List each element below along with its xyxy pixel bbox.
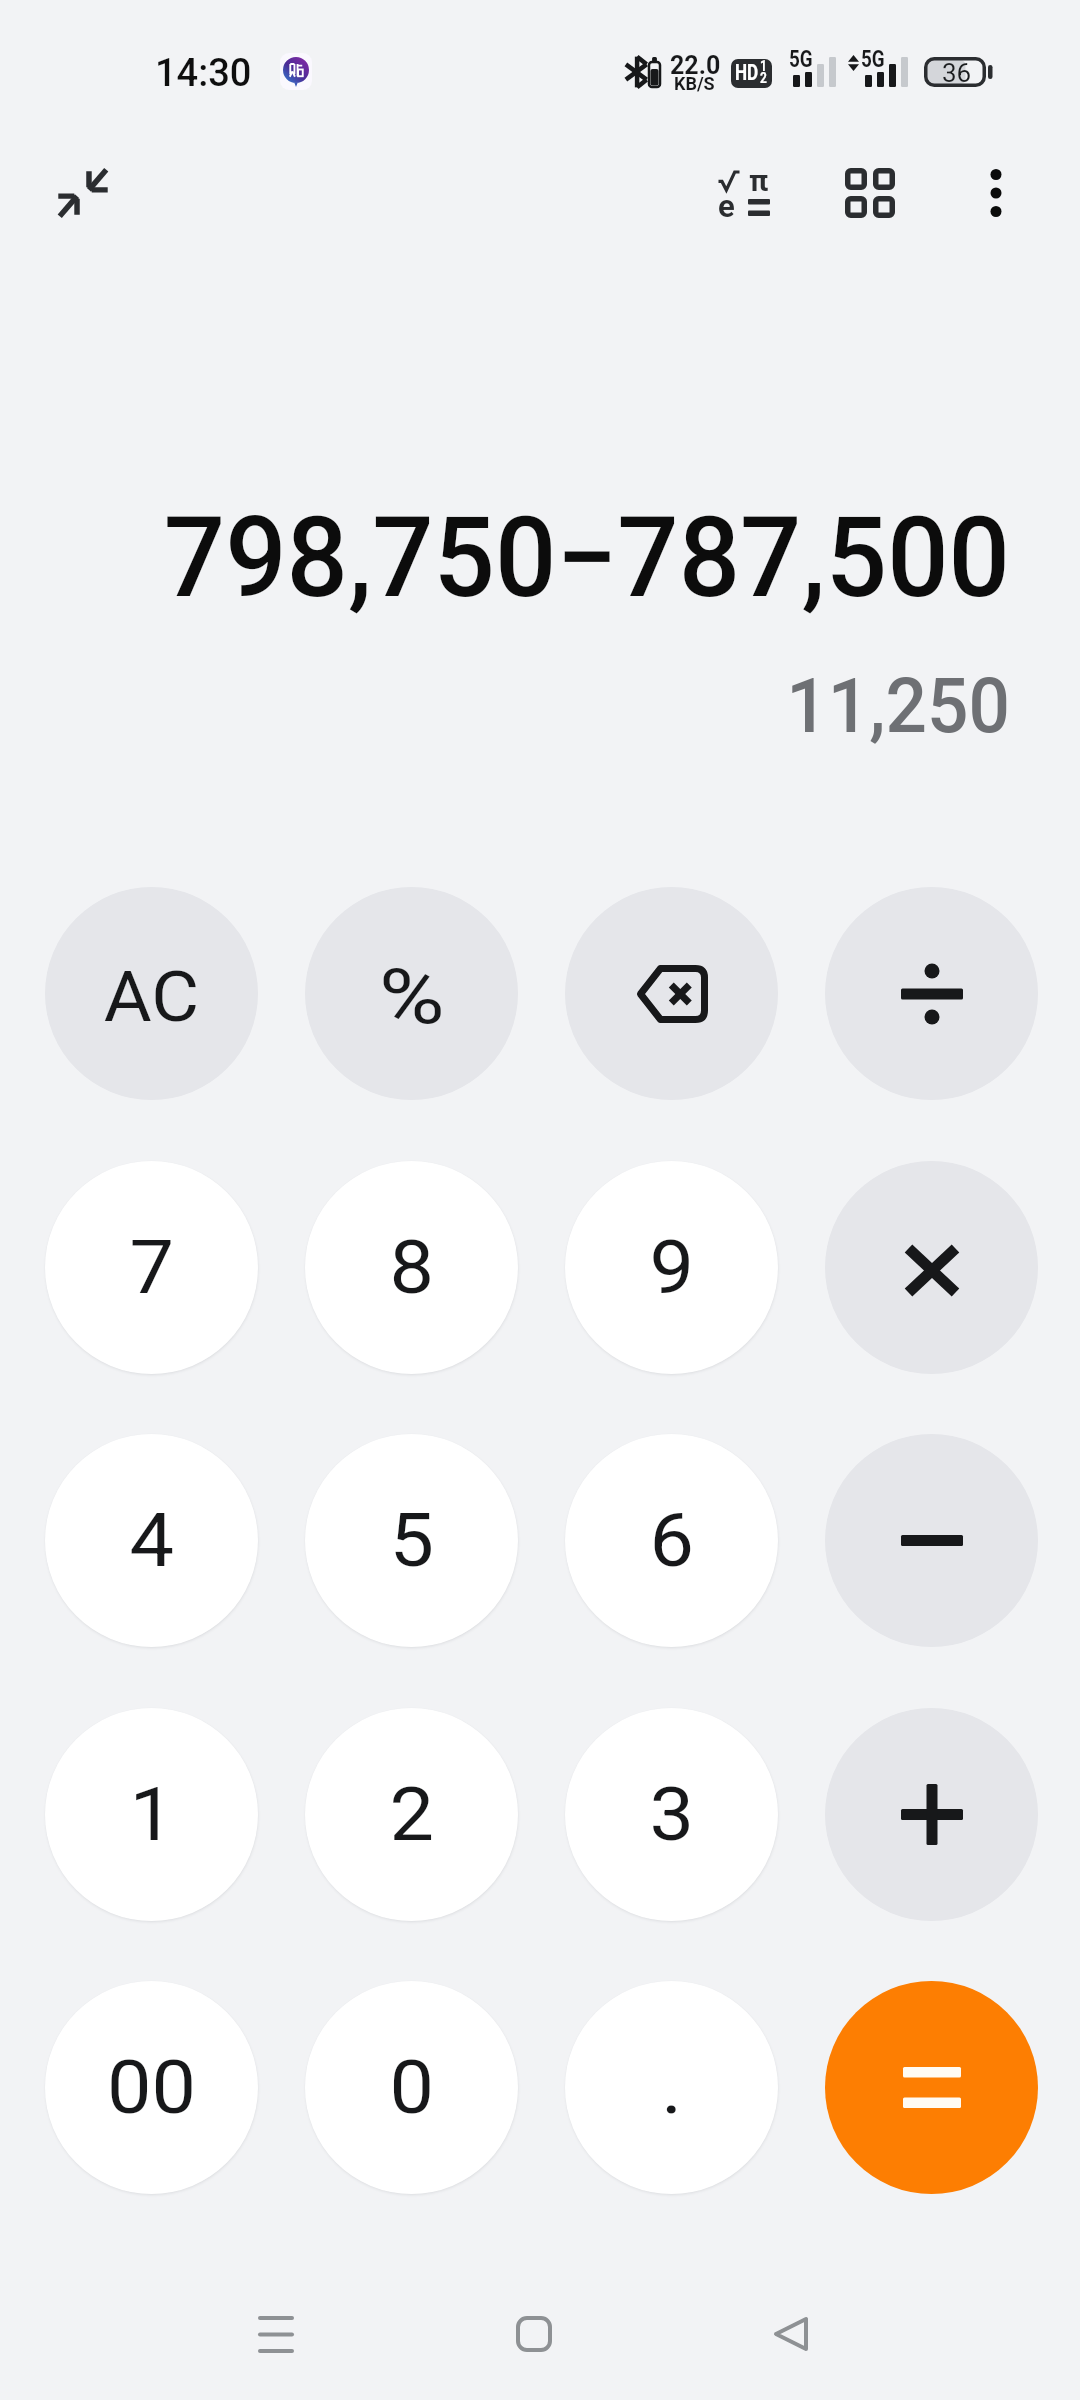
button[interactable]: Back: [732, 2274, 852, 2394]
button[interactable]: 1: [45, 1708, 258, 1921]
button[interactable]: 3: [565, 1708, 778, 1921]
staticText: KB/S: [674, 73, 715, 94]
staticText: HD: [735, 60, 758, 86]
button[interactable]: More options: [940, 137, 1052, 249]
button[interactable]: 0: [305, 1981, 518, 2194]
button[interactable]: 7: [45, 1161, 258, 1374]
staticText: 11,250: [786, 661, 1010, 750]
button[interactable]: 9: [565, 1161, 778, 1374]
staticText: e: [718, 188, 735, 224]
staticText: 3: [649, 1771, 694, 1858]
staticText: 7: [129, 1224, 174, 1311]
button[interactable]: Equals: [825, 1981, 1038, 2194]
button[interactable]: 2: [305, 1708, 518, 1921]
staticText: 2: [389, 1771, 434, 1858]
button[interactable]: 00: [45, 1981, 258, 2194]
button[interactable]: %: [305, 887, 518, 1100]
button[interactable]: Unit converter: [814, 137, 926, 249]
button[interactable]: Delete: [565, 887, 778, 1100]
button[interactable]: Multiply: [825, 1161, 1038, 1374]
button[interactable]: Scientific mode: [688, 137, 800, 249]
staticText: 5G: [861, 46, 885, 73]
button[interactable]: .: [565, 1981, 778, 2194]
staticText: 2: [760, 69, 767, 87]
staticText: 8: [389, 1224, 434, 1311]
staticText: 5: [389, 1497, 434, 1584]
staticText: .: [661, 2044, 683, 2131]
staticText: 798,750−787,500: [164, 492, 1010, 623]
staticText: 22.0: [670, 51, 721, 80]
staticText: %: [379, 952, 445, 1041]
button[interactable]: Home: [474, 2274, 594, 2394]
button[interactable]: 4: [45, 1434, 258, 1647]
button[interactable]: Add: [825, 1708, 1038, 1921]
button[interactable]: 5: [305, 1434, 518, 1647]
button[interactable]: 6: [565, 1434, 778, 1647]
button[interactable]: Collapse: [27, 137, 139, 249]
staticText: 00: [107, 2044, 197, 2131]
staticText: 9: [649, 1224, 694, 1311]
staticText: AC: [104, 956, 199, 1038]
button[interactable]: AC: [45, 887, 258, 1100]
staticText: 14:30: [155, 51, 252, 96]
staticText: 0: [389, 2044, 434, 2131]
button[interactable]: 8: [305, 1161, 518, 1374]
staticText: 36: [942, 58, 972, 88]
staticText: 4: [129, 1497, 174, 1584]
staticText: 1: [129, 1771, 174, 1858]
button[interactable]: Divide: [825, 887, 1038, 1100]
staticText: π: [749, 163, 769, 198]
button[interactable]: Subtract: [825, 1434, 1038, 1647]
button[interactable]: Recent apps: [216, 2274, 336, 2394]
staticText: 1: [760, 59, 767, 75]
staticText: 5G: [789, 46, 813, 73]
staticText: 6: [649, 1497, 694, 1584]
